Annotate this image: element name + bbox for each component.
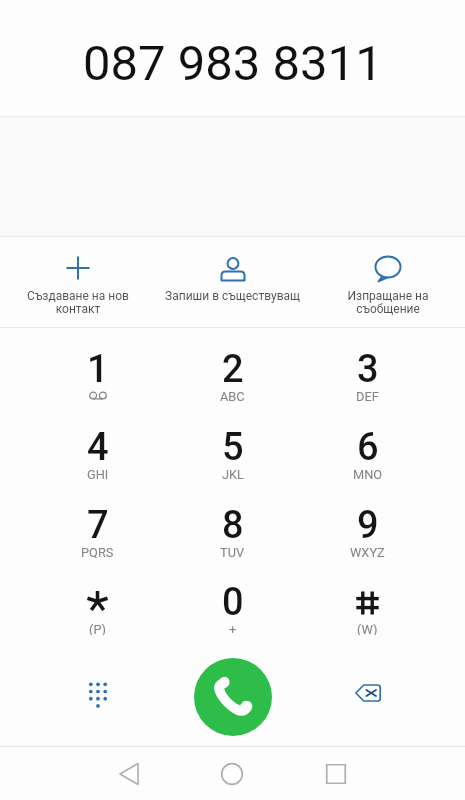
staticText: Създаване на нов контакт (27, 289, 129, 316)
staticText: + (229, 622, 237, 635)
staticText: GHI (87, 467, 109, 480)
staticText: TUV (220, 545, 245, 558)
staticText: 3 (357, 347, 379, 383)
staticText: ABC (220, 389, 245, 402)
staticText: 6 (357, 425, 379, 461)
button[interactable]: (W) (300, 565, 435, 642)
button[interactable]: 5 (165, 409, 300, 487)
staticText: Изпращане на съобщение (347, 289, 429, 316)
button[interactable]: Запиши в съществуващ (155, 237, 310, 327)
button[interactable]: Back (107, 752, 151, 796)
staticText: 9 (357, 503, 379, 539)
staticText: (P) (89, 622, 106, 635)
button[interactable]: 4 (30, 409, 165, 487)
staticText: Запиши в съществуващ (165, 289, 300, 303)
staticText: DEF (356, 389, 379, 402)
button[interactable]: 8 (165, 487, 300, 565)
button[interactable]: Dialpad (67, 662, 129, 724)
button[interactable]: Home (210, 752, 254, 796)
button[interactable]: 9 (300, 487, 435, 565)
staticText: 5 (222, 425, 244, 461)
button[interactable]: 3 (300, 331, 435, 409)
button[interactable]: Call (194, 658, 272, 736)
button[interactable]: Recent apps (314, 752, 358, 796)
button[interactable]: Backspace (337, 662, 399, 724)
button[interactable]: 7 (30, 487, 165, 565)
staticText: 1 (87, 347, 109, 383)
staticText: 8 (222, 503, 244, 539)
staticText: 4 (87, 425, 109, 461)
staticText: 0 (222, 580, 244, 616)
staticText: (W) (357, 622, 378, 635)
button[interactable]: 6 (300, 409, 435, 487)
button[interactable]: 2 (165, 331, 300, 409)
button[interactable]: Изпращане на съобщение (310, 237, 465, 327)
button[interactable]: 0 (165, 565, 300, 642)
button[interactable]: 1 (30, 331, 165, 409)
staticText: 087 983 8311 (83, 35, 383, 92)
staticText: PQRS (81, 545, 114, 558)
staticText: MNO (353, 467, 383, 480)
button[interactable]: Създаване на нов контакт (0, 237, 155, 327)
staticText: 7 (87, 503, 109, 539)
staticText: WXYZ (350, 545, 385, 558)
staticText: 2 (222, 347, 244, 383)
staticText: JKL (222, 467, 244, 480)
button[interactable]: (P) (30, 565, 165, 642)
